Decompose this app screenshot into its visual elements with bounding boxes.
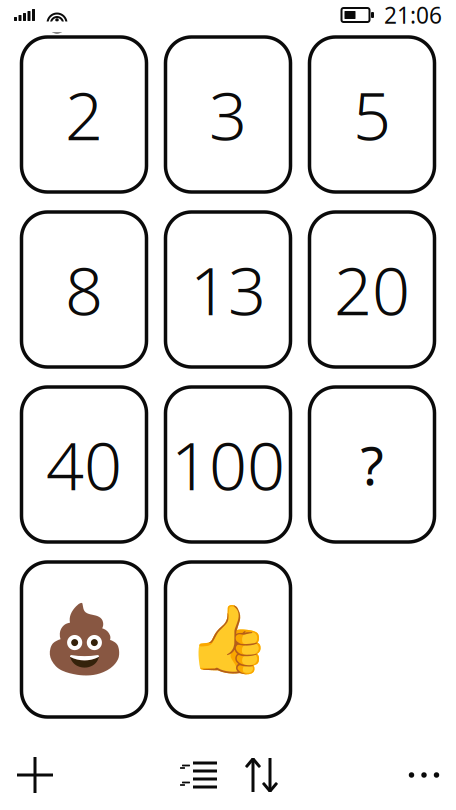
staticText: 2 [65,70,103,159]
button[interactable]: 13 [165,212,290,367]
staticText: 21:06 [384,0,442,30]
button[interactable]: 2 [21,37,146,192]
button[interactable]: Sort [239,753,283,797]
staticText: 20 [334,245,410,334]
button[interactable]: 100 [165,387,290,542]
button[interactable]: 40 [21,387,146,542]
button[interactable]: 3 [165,37,290,192]
staticText: 3 [209,70,247,159]
staticText: 13 [190,245,266,334]
button[interactable]: More [402,753,446,797]
staticText: 💩 [42,601,125,678]
staticText: 100 [171,420,285,509]
button[interactable]: ? [309,387,434,542]
button[interactable]: 5 [309,37,434,192]
button[interactable]: 8 [21,212,146,367]
button[interactable]: Add [13,753,57,797]
staticText: 👍 [186,601,269,678]
staticText: ? [360,429,383,500]
button[interactable]: 💩 [21,562,146,717]
staticText: 8 [65,245,103,334]
button[interactable]: 👍 [165,562,290,717]
button[interactable]: 20 [309,212,434,367]
staticText: 5 [353,70,391,159]
staticText: 40 [46,420,122,509]
button[interactable]: Select [175,753,221,797]
